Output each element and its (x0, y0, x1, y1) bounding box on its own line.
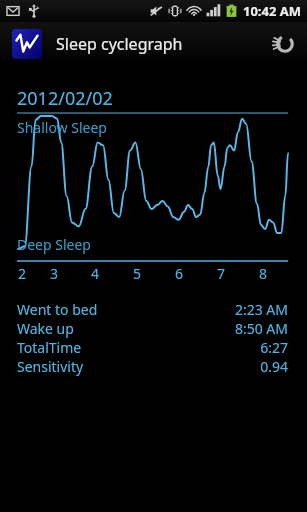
staticText: 0.94 (260, 357, 288, 376)
button[interactable]: Sensitivity (17, 357, 288, 376)
staticText: Deep Sleep (17, 235, 91, 254)
button[interactable]: Refresh (263, 22, 307, 66)
button[interactable]: Went to bed (17, 300, 288, 319)
staticText: 8 (259, 264, 268, 283)
staticText: 10:42 AM (243, 2, 302, 20)
staticText: 8:50 AM (234, 319, 288, 338)
staticText: Wake up (17, 319, 74, 338)
staticText: 3 (50, 264, 59, 283)
staticText: Shallow Sleep (17, 118, 107, 137)
staticText: 6 (175, 264, 184, 283)
staticText: Went to bed (17, 300, 98, 319)
staticText: 2:23 AM (234, 300, 288, 319)
staticText: 4 (91, 264, 100, 283)
staticText: 5 (133, 264, 142, 283)
staticText: Sensitivity (17, 357, 84, 376)
staticText: 2 (18, 264, 27, 283)
staticText: 2012/02/02 (17, 86, 113, 111)
staticText: 6:27 (260, 338, 288, 357)
button[interactable]: Wake up (17, 319, 288, 338)
staticText: 7 (217, 264, 226, 283)
button[interactable]: TotalTime (17, 338, 288, 357)
staticText: Sleep cyclegraph (56, 33, 183, 55)
staticText: TotalTime (17, 338, 82, 357)
